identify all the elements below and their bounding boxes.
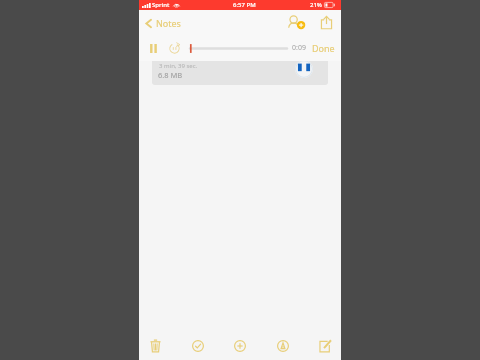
button[interactable]: Pause audio xyxy=(295,60,313,78)
staticText: 3 min, 39 sec. xyxy=(159,62,198,70)
staticText: Sprint xyxy=(152,1,170,9)
button[interactable]: New Note xyxy=(312,333,338,359)
button[interactable]: Pause xyxy=(148,43,159,54)
button[interactable]: Checklist xyxy=(185,333,211,359)
staticText: 6.8 MB xyxy=(158,70,183,80)
button[interactable]: Markup xyxy=(270,333,296,359)
button[interactable]: Done xyxy=(312,42,335,54)
button[interactable]: Delete xyxy=(142,333,168,359)
button[interactable]: 3 min, 39 sec. xyxy=(152,54,328,85)
staticText: 21% xyxy=(310,1,322,9)
button[interactable]: Share xyxy=(318,13,334,31)
staticText: 6:57 PM xyxy=(233,1,256,9)
staticText: Notes xyxy=(156,17,181,29)
button[interactable]: Rewind 15 seconds xyxy=(168,42,180,54)
button[interactable]: Add People xyxy=(286,13,306,31)
staticText: 0:09 xyxy=(292,43,306,53)
staticText: Done xyxy=(312,42,335,54)
button[interactable]: Add Attachment xyxy=(227,333,253,359)
button[interactable]: Notes xyxy=(144,17,181,29)
